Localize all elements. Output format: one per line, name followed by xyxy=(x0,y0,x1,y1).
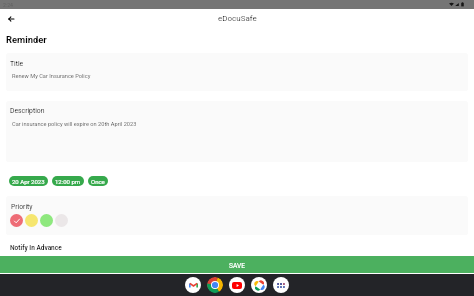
button[interactable]: Priority level xyxy=(25,214,38,227)
button[interactable]: Once xyxy=(88,176,108,186)
button[interactable]: Back xyxy=(4,12,17,25)
staticText: Notify In Advance xyxy=(10,244,62,252)
button[interactable]: Priority level xyxy=(40,214,53,227)
staticText: Description xyxy=(10,107,45,115)
button[interactable]: All apps xyxy=(273,277,289,293)
button[interactable]: Priority level xyxy=(55,214,68,227)
staticText: Priority xyxy=(11,203,33,211)
button[interactable]: Gmail xyxy=(185,277,201,293)
staticText: SAVE xyxy=(229,262,245,270)
button[interactable]: YouTube xyxy=(229,277,245,293)
button[interactable]: SAVE xyxy=(0,256,474,273)
staticText: Reminder xyxy=(6,34,47,45)
button[interactable]: Photos xyxy=(251,277,267,293)
button[interactable]: 20 Apr 2023 xyxy=(9,176,48,186)
button[interactable]: Chrome xyxy=(207,277,223,293)
staticText: Car insurance policy will expire on 20th… xyxy=(12,121,137,128)
staticText: 20 Apr 2023 xyxy=(12,178,45,185)
staticText: 2:24 xyxy=(3,2,14,8)
button[interactable]: 12:00 pm xyxy=(52,176,84,186)
button[interactable]: Description xyxy=(6,101,468,162)
staticText: Once xyxy=(91,178,105,185)
button[interactable]: Title xyxy=(6,53,468,91)
button[interactable]: Priority level xyxy=(10,214,23,227)
staticText: 12:00 pm xyxy=(55,178,81,185)
staticText: eDocuSafe xyxy=(218,14,257,23)
staticText: Renew My Car Insurance Policy xyxy=(12,73,91,80)
staticText: Title xyxy=(10,60,24,68)
